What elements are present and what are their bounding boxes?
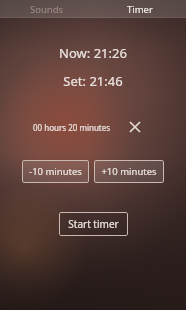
staticText: 00 hours 20 minutes [33, 122, 111, 133]
staticText: Start timer [68, 217, 119, 231]
staticText: Set: 21:46 [0, 72, 186, 90]
staticText: +10 minutes [101, 165, 157, 178]
staticText: Timer [127, 3, 153, 16]
staticText: Sounds [30, 3, 64, 16]
button[interactable]: Timer [93, 0, 186, 18]
staticText: Now: 21:26 [0, 44, 186, 62]
button[interactable]: Sounds [0, 0, 93, 18]
button[interactable]: -10 minutes [22, 160, 89, 183]
button[interactable]: Clear timer [124, 116, 146, 138]
staticText: -10 minutes [29, 165, 82, 178]
button[interactable]: Start timer [59, 212, 128, 236]
button[interactable]: +10 minutes [94, 160, 164, 183]
